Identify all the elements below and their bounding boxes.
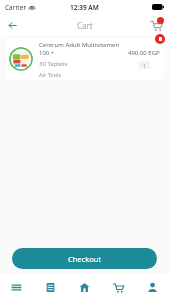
staticText: Checkout	[68, 254, 102, 264]
staticText: Carrier	[5, 3, 27, 12]
button[interactable]: Back	[4, 17, 20, 33]
button[interactable]: Centrum Adult Multivitamen 100 +	[5, 38, 164, 80]
button[interactable]: Home	[67, 274, 101, 300]
staticText: Centrum Adult Multivitamen 100 +	[39, 41, 125, 57]
staticText: 490.00 EGP	[128, 49, 160, 57]
button[interactable]: Menu	[0, 274, 33, 300]
button[interactable]: Orders	[33, 274, 67, 300]
staticText: Air Tools	[39, 71, 62, 78]
staticText: 12:39 AM	[70, 3, 99, 12]
button[interactable]: Checkout	[12, 248, 157, 269]
button[interactable]: Remove item	[155, 34, 165, 44]
button[interactable]: 1	[139, 61, 150, 69]
staticText: Cart	[77, 20, 93, 31]
button[interactable]: Cart	[147, 16, 165, 34]
button[interactable]: Profile	[135, 274, 169, 300]
staticText: 1	[143, 62, 147, 69]
staticText: 30 Taplets	[39, 60, 68, 68]
button[interactable]: Cart	[101, 274, 135, 300]
